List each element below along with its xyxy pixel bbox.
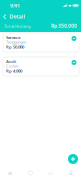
button[interactable]: Add [67, 153, 79, 165]
staticText: Cicilan [6, 64, 18, 68]
staticText: Andi [6, 59, 16, 63]
staticText: Rp 50.000 [6, 45, 24, 49]
staticText: Tanggungan [6, 40, 26, 44]
button[interactable]: More [70, 35, 77, 42]
button[interactable]: Home [0, 166, 20, 180]
staticText: Rp 350.000 [51, 23, 77, 29]
button[interactable]: Andi [3, 57, 79, 76]
button[interactable]: History [20, 166, 40, 180]
button[interactable]: Profile [61, 166, 81, 180]
staticText: Detail [9, 14, 25, 19]
staticText: Sarawa [6, 35, 20, 39]
staticText: 9:41 [10, 3, 20, 8]
staticText: Total Hutang [4, 24, 31, 28]
button[interactable]: Sarawa [3, 33, 79, 52]
staticText: Rp 4.000 [6, 69, 22, 73]
button[interactable]: More [70, 59, 77, 66]
button[interactable]: Back [1, 11, 8, 21]
